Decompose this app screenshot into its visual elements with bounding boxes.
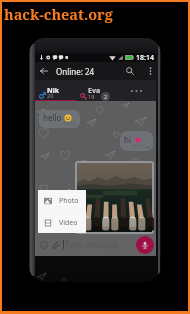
button[interactable]: Emoji [38, 239, 49, 250]
button[interactable]: More tabs [116, 80, 156, 101]
button[interactable]: Attach [50, 239, 61, 250]
staticText: hi [124, 134, 132, 145]
button[interactable] [75, 161, 154, 234]
staticText: Nik [47, 86, 60, 96]
button[interactable]: Nik [35, 80, 76, 101]
staticText: Type message [65, 239, 119, 250]
button[interactable]: hello [39, 110, 80, 128]
staticText: 19 [88, 93, 95, 100]
staticText: Photo [59, 196, 79, 206]
staticText: Online: 24 [56, 66, 95, 77]
staticText: 2 [104, 93, 108, 100]
button[interactable]: Record voice message [136, 236, 154, 254]
staticText: 18:14 [136, 53, 154, 62]
button[interactable]: Video [38, 212, 86, 233]
staticText: Video [59, 218, 78, 228]
button[interactable]: Search [122, 62, 138, 80]
button[interactable]: More options [145, 62, 156, 80]
staticText: hack-cheat.org [4, 4, 113, 24]
staticText: 15:13 [132, 143, 145, 150]
staticText: hello [43, 112, 62, 123]
staticText: 20 [47, 92, 54, 99]
staticText: Eva [88, 86, 101, 96]
button[interactable]: Photo [38, 190, 86, 212]
button[interactable]: Back [35, 62, 52, 80]
staticText: 15:12 [63, 121, 76, 128]
button[interactable]: hi [120, 131, 153, 151]
button[interactable]: Eva [76, 80, 116, 101]
